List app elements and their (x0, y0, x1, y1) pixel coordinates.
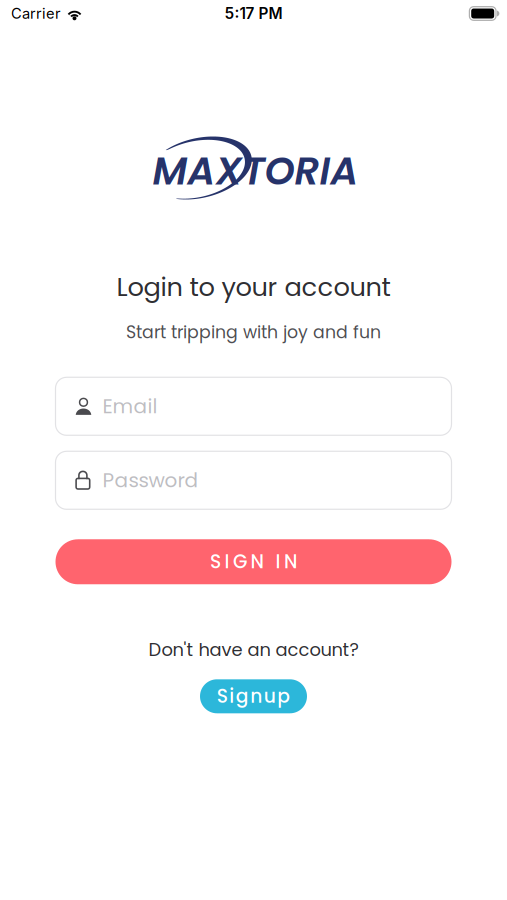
button[interactable]: Password (55, 451, 451, 509)
staticText: Don't have an account? (148, 637, 358, 662)
staticText: Login to your account (116, 269, 390, 305)
staticText: Start tripping with joy and fun (126, 320, 381, 344)
staticText: Signup (217, 683, 290, 709)
button[interactable]: Signup (200, 679, 307, 713)
staticText: Carrier (11, 5, 61, 22)
staticText: Password (102, 466, 198, 494)
staticText: SIGN IN (210, 549, 297, 575)
button[interactable]: Email (55, 377, 451, 435)
staticText: 5:17 PM (224, 4, 282, 23)
button[interactable]: SIGN IN (55, 539, 451, 584)
staticText: MAXTORIA (152, 144, 358, 198)
staticText: Email (102, 392, 157, 420)
